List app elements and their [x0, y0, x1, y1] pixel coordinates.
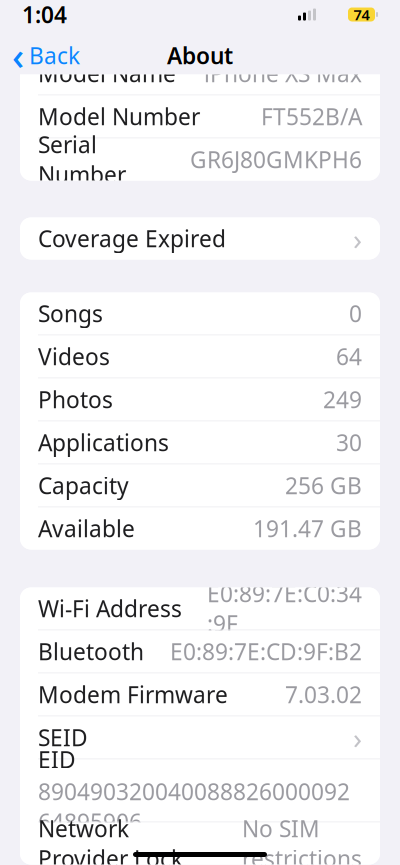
staticText: EID	[38, 744, 76, 774]
button[interactable]: Capacity	[20, 464, 380, 506]
staticText: 89049032004008882600009264895906	[38, 776, 350, 837]
button[interactable]: Modem Firmware	[20, 673, 380, 715]
button[interactable]: Wi-Fi Address	[20, 587, 380, 629]
staticText: Model Name	[38, 58, 176, 88]
staticText: 249	[323, 384, 362, 414]
staticText: Modem Firmware	[38, 679, 228, 709]
staticText: Songs	[38, 298, 103, 328]
staticText: Coverage Expired	[38, 223, 226, 253]
button[interactable]: Available	[20, 507, 380, 549]
button[interactable]: ‹	[0, 36, 92, 74]
staticText: FT552B/A	[261, 101, 362, 131]
staticText: Wi-Fi Address	[38, 593, 182, 623]
staticText: Capacity	[38, 470, 129, 500]
staticText: Videos	[38, 341, 110, 371]
staticText: ›	[353, 718, 362, 757]
button[interactable]: Bluetooth	[20, 630, 380, 672]
staticText: Photos	[38, 384, 113, 414]
staticText: Bluetooth	[38, 636, 144, 666]
staticText: Model Number	[38, 101, 200, 131]
staticText: 74	[353, 5, 369, 24]
staticText: Back	[29, 40, 80, 70]
button[interactable]: Network Provider Lock	[20, 822, 380, 864]
button[interactable]: Applications	[20, 421, 380, 463]
staticText: 1:04	[22, 0, 67, 29]
staticText: ‹	[12, 31, 24, 80]
button[interactable]: Coverage Expired	[20, 217, 380, 259]
staticText: 0	[349, 298, 362, 328]
button[interactable]: EID	[20, 759, 380, 821]
staticText: No SIM restrictions	[242, 813, 362, 865]
staticText: SEID	[38, 722, 88, 752]
staticText: ›	[353, 219, 362, 258]
staticText: Network Provider Lock	[38, 813, 183, 865]
staticText: Serial Number	[38, 129, 126, 190]
staticText: GR6J80GMKPH6	[190, 144, 362, 174]
staticText: E0:89:7E:C0:34:9F	[207, 578, 362, 639]
staticText: 30	[336, 427, 362, 457]
staticText: 191.47 GB	[253, 513, 362, 543]
staticText: iPhone XS Max	[204, 58, 362, 88]
button[interactable]: Videos	[20, 335, 380, 377]
staticText: 7.03.02	[285, 679, 362, 709]
button[interactable]: Songs	[20, 292, 380, 334]
staticText: About	[167, 40, 233, 70]
button[interactable]: Photos	[20, 378, 380, 420]
staticText: E0:89:7E:CD:9F:B2	[170, 636, 362, 666]
staticText: Available	[38, 513, 135, 543]
button[interactable]: Model Name	[20, 52, 380, 94]
staticText: 256 GB	[285, 470, 362, 500]
staticText: 64	[336, 341, 362, 371]
button[interactable]: Model Number	[20, 95, 380, 137]
button[interactable]: SEID	[20, 716, 380, 758]
button[interactable]: Serial Number	[20, 138, 380, 180]
staticText: Applications	[38, 427, 169, 457]
